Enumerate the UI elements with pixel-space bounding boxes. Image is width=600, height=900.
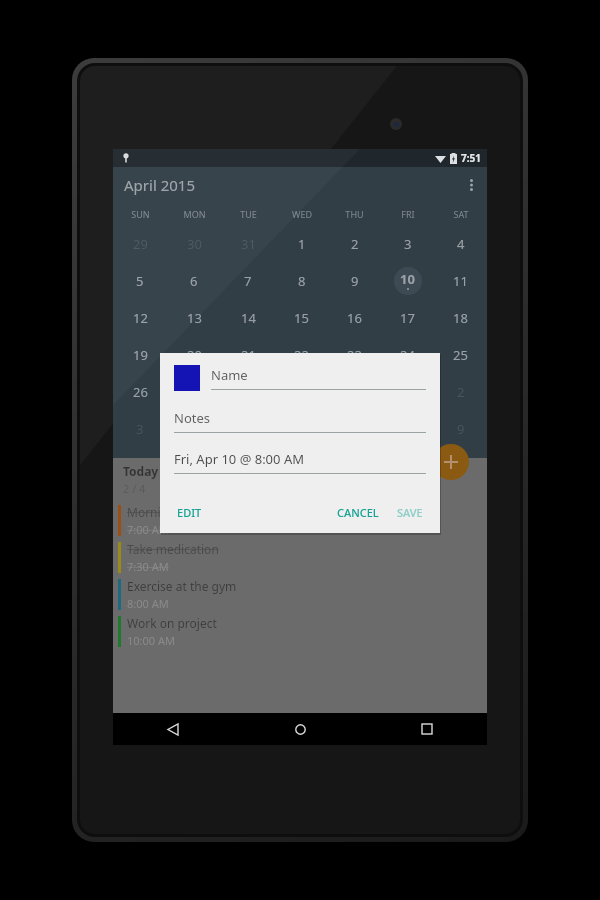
button[interactable]: SAVE xyxy=(388,499,432,526)
button[interactable]: Work on project xyxy=(113,613,487,650)
button[interactable]: Add task xyxy=(433,444,469,480)
staticText: 7:00 AM xyxy=(127,522,169,537)
button[interactable]: 6 xyxy=(167,262,221,299)
staticText: 2 xyxy=(351,235,359,253)
button[interactable]: 3 xyxy=(113,410,167,447)
button[interactable]: 15 xyxy=(275,299,328,336)
staticText: 17 xyxy=(400,309,415,327)
staticText: 29 xyxy=(133,235,148,253)
staticText: 28 xyxy=(241,383,256,401)
button[interactable]: 25 xyxy=(434,336,487,373)
button[interactable]: 2 xyxy=(434,373,487,410)
staticText: 12 xyxy=(133,309,148,327)
staticText: 19 xyxy=(133,346,148,364)
staticText: WED xyxy=(292,208,312,220)
staticText: 8 xyxy=(298,272,306,290)
button[interactable]: 19 xyxy=(113,336,167,373)
button[interactable]: 13 xyxy=(167,299,221,336)
button[interactable]: 17 xyxy=(381,299,434,336)
button[interactable]: 4 xyxy=(434,225,487,262)
button[interactable]: 18 xyxy=(434,299,487,336)
button[interactable]: 6 xyxy=(275,410,328,447)
button[interactable]: 8 xyxy=(275,262,328,299)
button[interactable]: 8 xyxy=(381,410,434,447)
staticText: 9 xyxy=(351,272,359,290)
button[interactable]: 12 xyxy=(113,299,167,336)
staticText: 3 xyxy=(136,420,144,438)
staticText: 29 xyxy=(294,383,309,401)
button[interactable]: More options xyxy=(455,169,487,201)
button[interactable]: Fri, Apr 10 @ 8:00 AM xyxy=(174,450,426,474)
button[interactable]: 21 xyxy=(221,336,275,373)
button[interactable]: 14 xyxy=(221,299,275,336)
button[interactable]: 28 xyxy=(221,373,275,410)
staticText: Take medication xyxy=(127,541,219,557)
staticText: 7:30 AM xyxy=(127,559,169,574)
staticText: 30 xyxy=(347,383,362,401)
staticText: 4 xyxy=(190,420,198,438)
button[interactable]: 24 xyxy=(381,336,434,373)
button[interactable]: 11 xyxy=(434,262,487,299)
button[interactable]: 22 xyxy=(275,336,328,373)
button[interactable]: Exercise at the gym xyxy=(113,576,487,613)
button[interactable]: Home xyxy=(284,713,316,745)
button[interactable]: Recent apps xyxy=(411,713,443,745)
staticText: 24 xyxy=(400,346,415,364)
button[interactable]: 20 xyxy=(167,336,221,373)
button[interactable]: 29 xyxy=(275,373,328,410)
staticText: EDIT xyxy=(177,505,202,520)
staticText: 11 xyxy=(453,272,468,290)
button[interactable]: Take medication xyxy=(113,539,487,576)
button[interactable]: 9 xyxy=(434,410,487,447)
staticText: 1 xyxy=(404,383,412,401)
button[interactable]: 4 xyxy=(167,410,221,447)
staticText: SUN xyxy=(131,208,150,220)
button[interactable]: 2 xyxy=(328,225,381,262)
staticText: 10 xyxy=(400,270,415,288)
button[interactable]: Name xyxy=(211,366,426,390)
button[interactable]: 23 xyxy=(328,336,381,373)
staticText: 27 xyxy=(187,383,202,401)
button[interactable]: 3 xyxy=(381,225,434,262)
staticText: 8 xyxy=(404,420,412,438)
staticText: 21 xyxy=(241,346,256,364)
staticText: Fri, Apr 10 @ 8:00 AM xyxy=(174,450,304,468)
staticText: Today xyxy=(123,463,159,479)
button[interactable]: 1 xyxy=(381,373,434,410)
button[interactable]: 9 xyxy=(328,262,381,299)
staticText: 7 xyxy=(244,272,252,290)
button[interactable]: 7 xyxy=(328,410,381,447)
staticText: 2 xyxy=(457,383,465,401)
staticText: 14 xyxy=(241,309,256,327)
button[interactable]: 5 xyxy=(221,410,275,447)
button[interactable]: 27 xyxy=(167,373,221,410)
staticText: 20 xyxy=(187,346,202,364)
staticText: 30 xyxy=(187,235,202,253)
button[interactable]: 1 xyxy=(275,225,328,262)
staticText: 26 xyxy=(133,383,148,401)
staticText: 7:51 xyxy=(461,151,481,165)
staticText: 6 xyxy=(190,272,198,290)
staticText: Name xyxy=(211,366,248,384)
button[interactable]: EDIT xyxy=(168,499,211,526)
button[interactable]: 7 xyxy=(221,262,275,299)
staticText: 18 xyxy=(453,309,468,327)
button[interactable]: 16 xyxy=(328,299,381,336)
staticText: 10:00 AM xyxy=(127,633,175,648)
button[interactable]: 30 xyxy=(328,373,381,410)
button[interactable]: 5 xyxy=(113,262,167,299)
button[interactable]: 31 xyxy=(221,225,275,262)
staticText: 16 xyxy=(347,309,362,327)
button[interactable]: CANCEL xyxy=(328,499,388,526)
button[interactable]: Back xyxy=(157,713,189,745)
button[interactable]: Morning routine xyxy=(113,502,487,539)
staticText: SAT xyxy=(453,208,469,220)
button[interactable]: 26 xyxy=(113,373,167,410)
staticText: Morning routine xyxy=(127,504,220,520)
button[interactable]: 10 xyxy=(381,262,434,299)
staticText: 2 / 4 xyxy=(123,481,146,496)
button[interactable]: Notes xyxy=(174,409,426,433)
